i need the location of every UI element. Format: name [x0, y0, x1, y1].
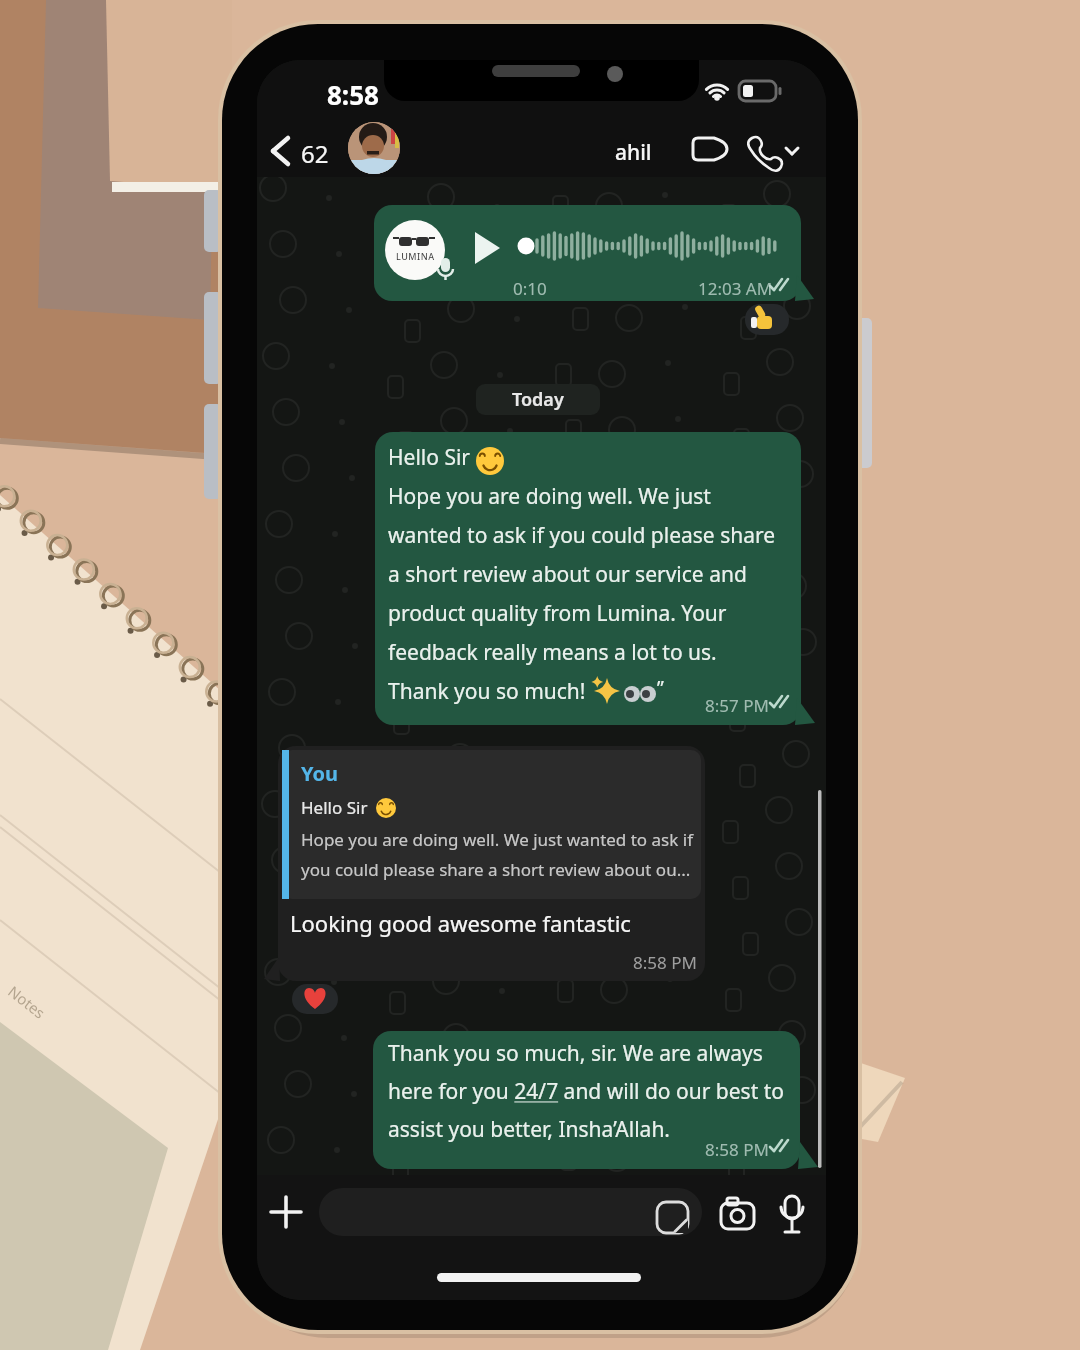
button[interactable] — [715, 1196, 759, 1236]
staticText: Today — [512, 387, 564, 412]
staticText: ” — [657, 675, 664, 701]
staticText: 0:10 — [513, 277, 547, 300]
staticText: wanted to ask if you could please share — [388, 521, 776, 550]
button[interactable] — [374, 205, 801, 301]
staticText: product quality from Lumina. Your — [388, 599, 727, 628]
staticText: Thank you so much! — [388, 677, 586, 706]
button[interactable]: 62 — [301, 137, 329, 170]
button[interactable] — [745, 304, 789, 335]
staticText: here for you 24/7 and will do our best t… — [388, 1077, 784, 1106]
staticText: 12:03 AM — [698, 277, 773, 300]
staticText: LUMINA — [396, 250, 435, 262]
button[interactable] — [267, 1193, 307, 1233]
button[interactable] — [743, 130, 801, 174]
staticText: 8:58 PM — [705, 1138, 769, 1161]
button[interactable] — [265, 130, 297, 174]
button[interactable] — [292, 984, 338, 1014]
button[interactable] — [373, 1031, 800, 1169]
staticText: Thank you so much, sir. We are always — [388, 1039, 763, 1068]
staticText: 8:58 — [327, 77, 379, 112]
button[interactable] — [278, 746, 705, 981]
button[interactable] — [375, 432, 801, 725]
staticText: Hope you are doing well. We just — [388, 482, 711, 511]
button[interactable] — [775, 1192, 809, 1238]
staticText: You — [301, 760, 339, 787]
button[interactable] — [687, 130, 733, 170]
staticText: Hello Sir — [388, 443, 471, 472]
button[interactable]: ahil — [615, 138, 652, 167]
staticText: Hope you are doing well. We just wanted … — [301, 828, 693, 851]
staticText: assist you better, Insha’Allah. — [388, 1115, 670, 1144]
staticText: Looking good awesome fantastic — [290, 908, 631, 938]
staticText: feedback really means a lot to us. — [388, 638, 717, 667]
button[interactable] — [319, 1188, 702, 1236]
staticText: Notes — [4, 981, 50, 1023]
staticText: you could please share a short review ab… — [301, 858, 691, 881]
staticText: 8:57 PM — [705, 694, 769, 717]
staticText: Hello Sir — [301, 796, 368, 819]
staticText: a short review about our service and — [388, 560, 747, 589]
staticText: 8:58 PM — [633, 951, 697, 974]
button[interactable] — [348, 122, 400, 174]
